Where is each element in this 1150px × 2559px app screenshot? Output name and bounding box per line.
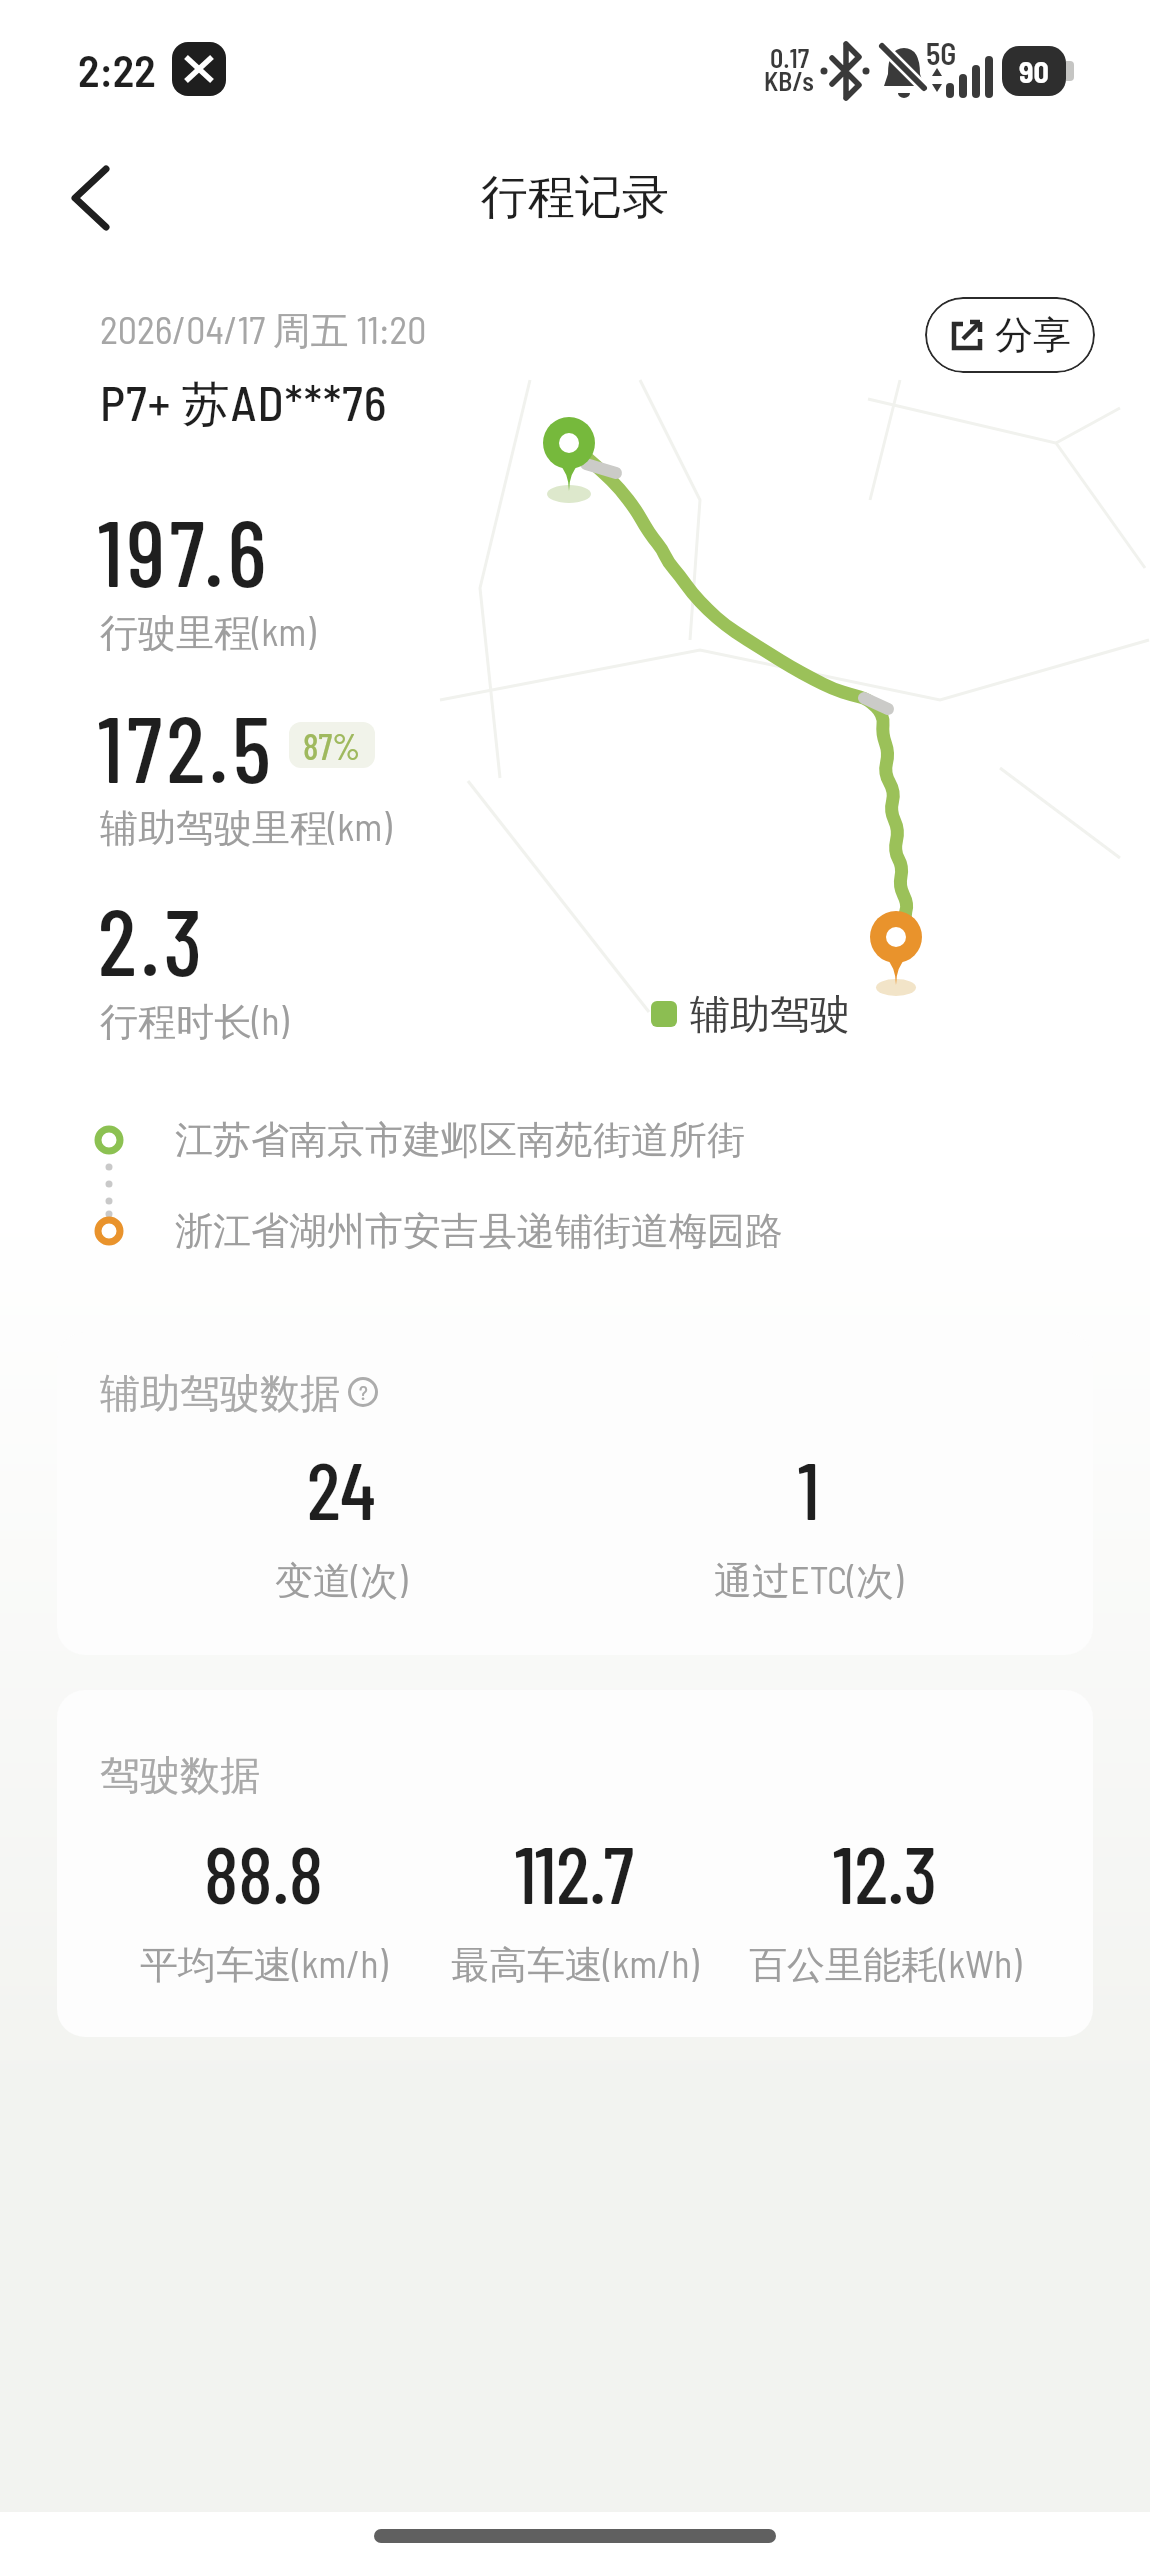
staticText: 2026/04/17 周五 11:20 <box>100 306 427 355</box>
staticText: 0.17 <box>770 42 810 72</box>
staticText: 行驶里程(km) <box>100 608 316 657</box>
staticText: 行程时长(h) <box>100 997 289 1046</box>
staticText: 通过ETC(次) <box>714 1556 904 1605</box>
staticText: 百公里能耗(kWh) <box>749 1940 1022 1989</box>
staticText: ? <box>359 1380 368 1404</box>
button[interactable]: ? <box>348 1377 378 1407</box>
staticText: 2:22 <box>78 43 156 96</box>
staticText: 5G <box>926 35 957 69</box>
staticText: 辅助驾驶里程(km) <box>100 803 392 852</box>
staticText: 197.6 <box>98 495 271 605</box>
button[interactable] <box>40 150 140 245</box>
staticText: P7+ 苏AD***76 <box>100 373 388 435</box>
staticText: 87% <box>303 724 361 767</box>
button[interactable]: 分享 <box>925 297 1095 373</box>
staticText: 1 <box>798 1440 820 1536</box>
staticText: 分享 <box>995 311 1071 359</box>
staticText: 江苏省南京市建邺区南苑街道所街 <box>175 1116 745 1164</box>
staticText: 最高车速(km/h) <box>451 1940 699 1989</box>
staticText: 辅助驾驶 <box>690 989 850 1039</box>
staticText: 172.5 <box>98 691 276 801</box>
staticText: 平均车速(km/h) <box>140 1940 388 1989</box>
staticText: KB/s <box>764 65 814 95</box>
staticText: 行程记录 <box>481 168 669 227</box>
staticText: 变道(次) <box>275 1556 408 1605</box>
staticText: 88.8 <box>204 1824 324 1920</box>
staticText: 浙江省湖州市安吉县递铺街道梅园路 <box>175 1207 783 1255</box>
staticText: 24 <box>307 1440 376 1536</box>
staticText: 12.3 <box>833 1824 938 1920</box>
staticText: 驾驶数据 <box>100 1750 260 1800</box>
staticText: 辅助驾驶数据 <box>100 1368 340 1416</box>
staticText: 2.3 <box>98 884 207 994</box>
staticText: 90 <box>1019 53 1049 89</box>
staticText: 112.7 <box>515 1824 634 1920</box>
